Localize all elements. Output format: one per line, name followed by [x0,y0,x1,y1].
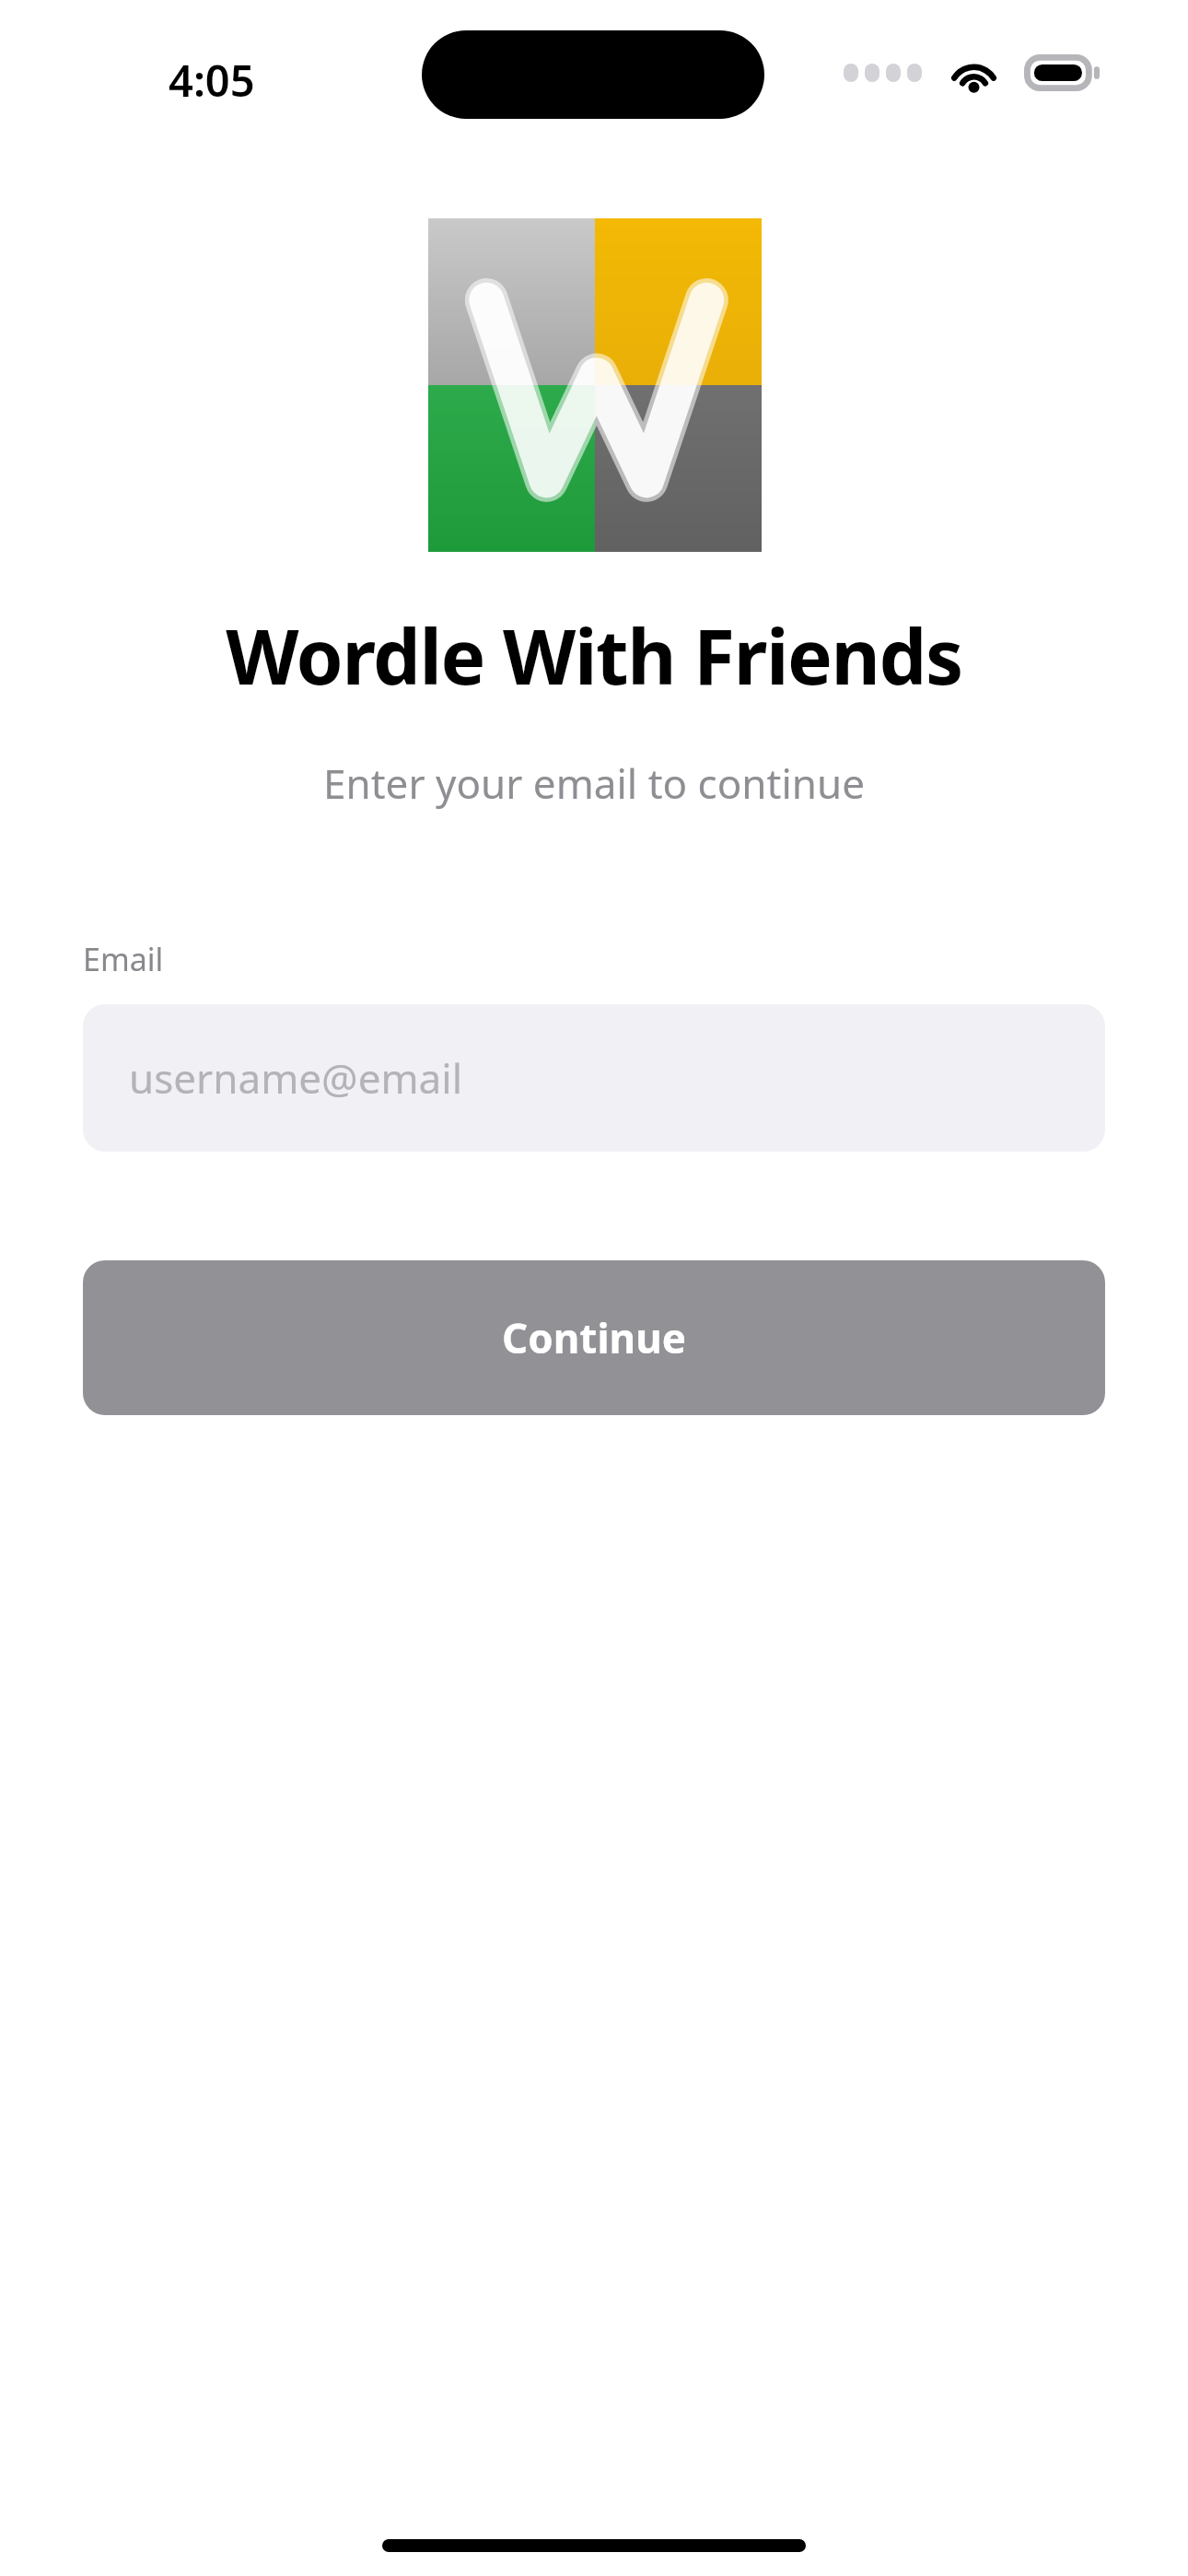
staticText: Wordle With Friends [0,603,1188,707]
button[interactable]: Continue [83,1260,1105,1415]
staticText: Enter your email to continue [0,755,1188,811]
staticText: Continue [502,1310,687,1365]
staticText: Email [83,938,164,980]
staticText: 4:05 [169,51,255,110]
staticText: username@email [129,1050,462,1106]
button[interactable]: username@email [83,1004,1105,1152]
